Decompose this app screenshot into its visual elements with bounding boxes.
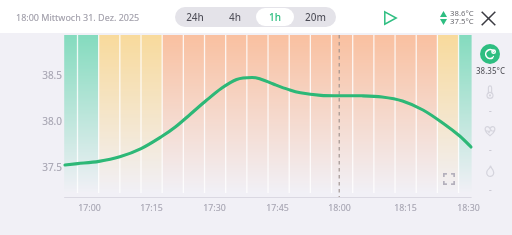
- button[interactable]: 4h: [216, 8, 254, 26]
- staticText: 17:30: [203, 202, 226, 214]
- button[interactable]: Heart rate: [479, 120, 501, 142]
- staticText: 38.35°C: [476, 65, 505, 76]
- staticText: 18:15: [394, 202, 417, 214]
- button[interactable]: 20m: [296, 8, 334, 26]
- staticText: 18:00: [328, 202, 351, 214]
- staticText: 24h: [186, 10, 204, 24]
- staticText: 18:30: [457, 202, 480, 214]
- staticText: -: [489, 105, 492, 116]
- button[interactable]: Current temperature status: [480, 44, 500, 64]
- staticText: 20m: [305, 10, 326, 24]
- staticText: 38.0: [42, 114, 62, 128]
- button[interactable]: Fullscreen: [439, 169, 459, 189]
- staticText: 18:00 Mittwoch 31. Dez. 2025: [16, 11, 140, 23]
- button[interactable]: Play: [377, 4, 404, 31]
- button[interactable]: Close: [475, 5, 502, 32]
- staticText: 4h: [229, 10, 241, 24]
- staticText: 37.5°C: [450, 16, 474, 27]
- staticText: 38.6°C: [450, 8, 474, 19]
- staticText: 38.5: [42, 68, 62, 82]
- staticText: 17:45: [266, 202, 289, 214]
- staticText: -: [489, 184, 492, 195]
- button[interactable]: 24h: [176, 8, 214, 26]
- staticText: 17:15: [140, 202, 163, 214]
- button[interactable]: Temperature: [479, 81, 501, 103]
- staticText: 1h: [269, 10, 281, 24]
- staticText: -: [489, 144, 492, 155]
- button[interactable]: Activity: [479, 160, 501, 182]
- staticText: 37.5: [42, 160, 62, 174]
- button[interactable]: 1h: [256, 8, 294, 26]
- staticText: 17:00: [78, 202, 101, 214]
